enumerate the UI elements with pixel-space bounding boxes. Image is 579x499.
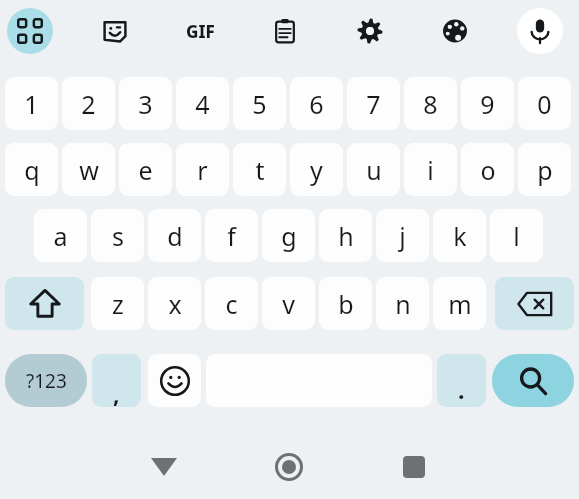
staticText: GIF — [186, 20, 215, 43]
button[interactable]: i — [404, 143, 457, 196]
button[interactable]: z — [91, 277, 144, 330]
staticText: x — [168, 287, 182, 321]
button[interactable]: Apps — [7, 8, 53, 54]
button[interactable]: , — [92, 354, 141, 407]
staticText: a — [53, 219, 68, 253]
button[interactable]: q — [5, 143, 58, 196]
staticText: w — [79, 153, 99, 187]
staticText: u — [366, 153, 382, 187]
button[interactable]: c — [205, 277, 258, 330]
button[interactable]: x — [148, 277, 201, 330]
button[interactable]: o — [461, 143, 514, 196]
staticText: 0 — [537, 87, 552, 121]
button[interactable]: 7 — [347, 77, 400, 130]
button[interactable]: 0 — [518, 77, 571, 130]
button[interactable]: h — [319, 209, 372, 262]
button[interactable]: a — [34, 209, 87, 262]
button[interactable]: e — [119, 143, 172, 196]
staticText: 6 — [309, 87, 324, 121]
staticText: 1 — [24, 87, 39, 121]
staticText: s — [112, 219, 124, 253]
staticText: g — [281, 219, 297, 253]
button[interactable]: Voice input — [517, 8, 563, 54]
button[interactable]: Clipboard — [262, 8, 308, 54]
button[interactable]: 6 — [290, 77, 343, 130]
staticText: z — [112, 287, 124, 321]
staticText: k — [453, 219, 467, 253]
staticText: i — [427, 153, 434, 187]
button[interactable]: f — [205, 209, 258, 262]
staticText: 3 — [138, 87, 153, 121]
staticText: c — [225, 287, 238, 321]
staticText: 4 — [195, 87, 210, 121]
button[interactable]: m — [433, 277, 486, 330]
button[interactable]: r — [176, 143, 229, 196]
staticText: m — [448, 287, 472, 321]
button[interactable]: g — [262, 209, 315, 262]
staticText: h — [338, 219, 354, 253]
staticText: 8 — [423, 87, 438, 121]
button[interactable]: Hide keyboard — [134, 447, 194, 487]
button[interactable]: ?123 — [5, 354, 87, 407]
button[interactable]: Backspace — [495, 277, 574, 330]
staticText: 2 — [81, 87, 96, 121]
button[interactable]: p — [518, 143, 571, 196]
button[interactable]: . — [437, 354, 486, 407]
staticText: 7 — [366, 87, 381, 121]
staticText: d — [167, 219, 183, 253]
button[interactable]: 5 — [233, 77, 286, 130]
button[interactable]: y — [290, 143, 343, 196]
button[interactable]: Stickers — [92, 8, 138, 54]
button[interactable]: k — [433, 209, 486, 262]
button[interactable]: 3 — [119, 77, 172, 130]
button[interactable]: j — [376, 209, 429, 262]
staticText: . — [458, 374, 465, 405]
button[interactable]: GIF — [177, 8, 223, 54]
button[interactable]: Home — [259, 447, 319, 487]
button[interactable]: 2 — [62, 77, 115, 130]
button[interactable]: w — [62, 143, 115, 196]
staticText: o — [480, 153, 496, 187]
button[interactable]: b — [319, 277, 372, 330]
staticText: p — [537, 153, 553, 187]
staticText: n — [395, 287, 411, 321]
button[interactable]: 4 — [176, 77, 229, 130]
staticText: t — [255, 153, 265, 187]
button[interactable]: Settings — [347, 8, 393, 54]
button[interactable]: Shift — [5, 277, 84, 330]
staticText: b — [338, 287, 354, 321]
staticText: , — [113, 378, 120, 407]
staticText: 5 — [252, 87, 267, 121]
button[interactable]: n — [376, 277, 429, 330]
button[interactable]: d — [148, 209, 201, 262]
button[interactable]: 8 — [404, 77, 457, 130]
button[interactable]: Themes — [432, 8, 478, 54]
button[interactable]: 9 — [461, 77, 514, 130]
staticText: v — [282, 287, 295, 321]
button[interactable]: l — [490, 209, 543, 262]
button[interactable]: GIF — [177, 8, 223, 54]
button[interactable]: u — [347, 143, 400, 196]
button[interactable]: Search — [492, 354, 574, 407]
button[interactable]: Recent apps — [384, 447, 444, 487]
button[interactable]: s — [91, 209, 144, 262]
staticText: l — [513, 219, 520, 253]
button[interactable]: Emoji — [148, 354, 201, 407]
button[interactable]: v — [262, 277, 315, 330]
staticText: e — [138, 153, 153, 187]
staticText: r — [197, 153, 208, 187]
staticText: 9 — [480, 87, 495, 121]
staticText: f — [227, 219, 236, 253]
button[interactable]: t — [233, 143, 286, 196]
button[interactable]: 1 — [5, 77, 58, 130]
staticText: y — [310, 153, 323, 187]
staticText: ?123 — [26, 368, 67, 394]
staticText: q — [24, 153, 40, 187]
staticText: j — [399, 219, 406, 253]
